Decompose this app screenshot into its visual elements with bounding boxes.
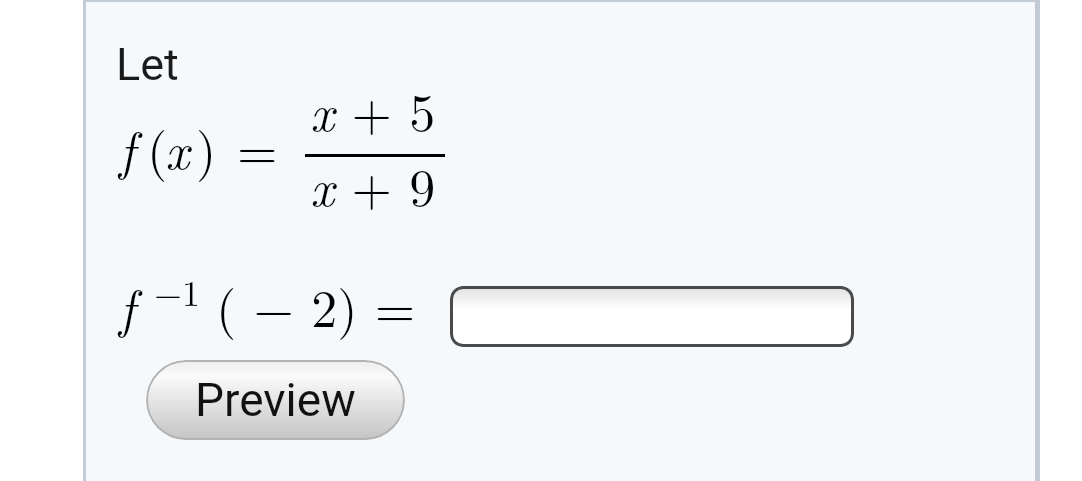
staticText: x — [165, 110, 190, 184]
staticText: = — [237, 110, 278, 184]
button[interactable]: Preview — [146, 360, 405, 440]
staticText: ) — [196, 110, 217, 184]
staticText: f — [119, 268, 135, 342]
staticText: ( − 2) = — [216, 268, 416, 342]
staticText: x + 9 — [310, 147, 436, 221]
staticText: x + 5 — [310, 72, 436, 146]
staticText: f — [119, 110, 135, 184]
staticText: Let — [116, 38, 179, 91]
staticText: −1 — [154, 265, 201, 316]
staticText: ( — [147, 110, 168, 184]
button[interactable] — [450, 286, 854, 347]
staticText: Preview — [195, 373, 356, 427]
